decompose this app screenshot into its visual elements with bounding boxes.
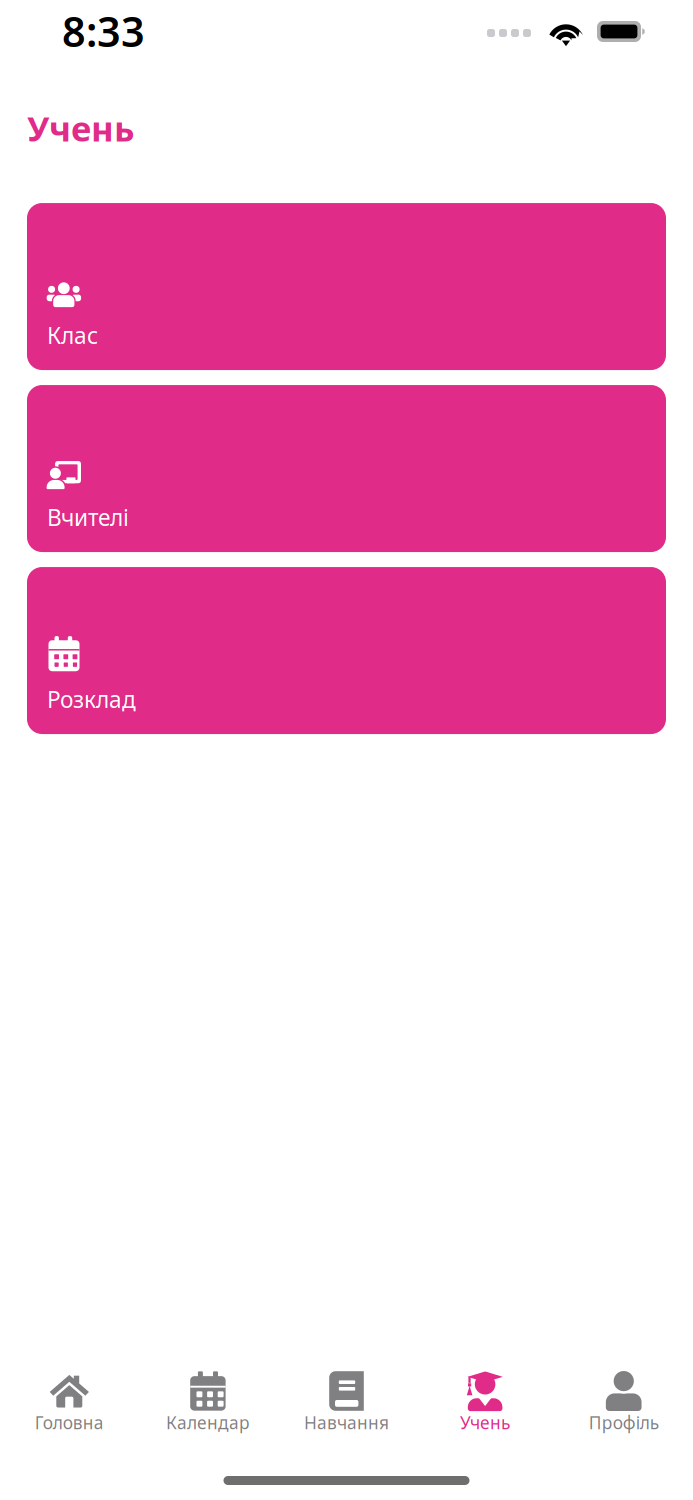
button[interactable]: Профіль xyxy=(554,1371,693,1434)
button[interactable]: Клас xyxy=(27,203,666,370)
staticText: Календар xyxy=(166,1411,250,1434)
button[interactable]: Календар xyxy=(139,1371,277,1434)
staticText: Профіль xyxy=(589,1411,659,1434)
button[interactable]: Розклад xyxy=(27,567,666,734)
staticText: Головна xyxy=(35,1411,104,1434)
button[interactable]: Навчання xyxy=(277,1371,416,1434)
staticText: Учень xyxy=(27,105,134,151)
staticText: 8:33 xyxy=(62,4,145,58)
button[interactable]: Головна xyxy=(0,1371,139,1434)
button[interactable]: Вчителі xyxy=(27,385,666,552)
staticText: Вчителі xyxy=(47,502,129,532)
staticText: Розклад xyxy=(47,684,136,714)
staticText: Навчання xyxy=(304,1411,389,1434)
staticText: Клас xyxy=(47,320,98,350)
staticText: Учень xyxy=(460,1411,510,1434)
button[interactable]: Учень xyxy=(416,1371,554,1434)
